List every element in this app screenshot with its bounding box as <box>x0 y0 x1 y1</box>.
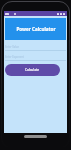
other: Home <box>24 135 47 138</box>
button[interactable]: Calculate <box>5 64 60 76</box>
button[interactable]: Power Calculator <box>5 18 66 40</box>
staticText: Calculate <box>25 68 40 72</box>
staticText: Power Calculator <box>16 26 56 32</box>
staticText: Enter Value <box>5 45 19 49</box>
staticText: Enter Exponent <box>5 55 24 59</box>
